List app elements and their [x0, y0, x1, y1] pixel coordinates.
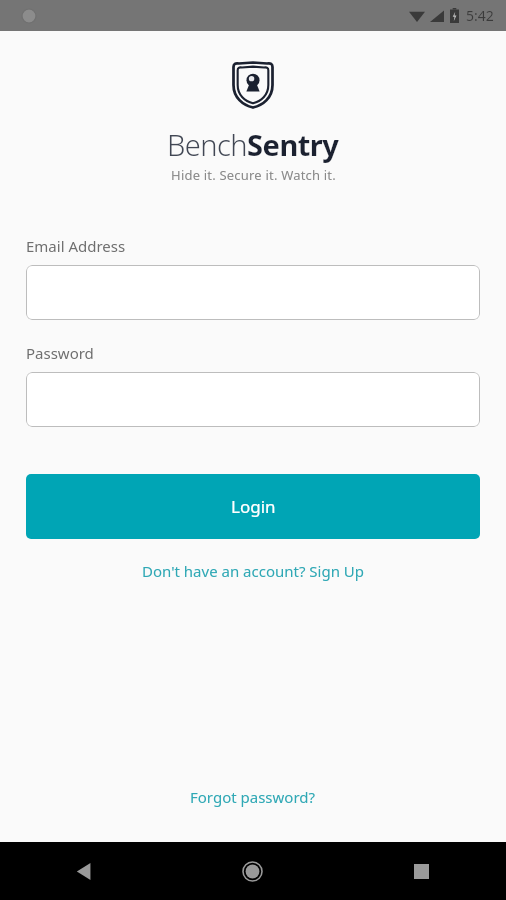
button[interactable]: Home — [168, 842, 337, 900]
button[interactable]: Don't have an account? Sign Up — [130, 557, 377, 585]
button[interactable] — [26, 265, 480, 320]
button[interactable]: Login — [26, 474, 480, 539]
staticText: Don't have an account? Sign Up — [142, 561, 365, 581]
staticText: Forgot password? — [190, 787, 316, 807]
button[interactable]: Back — [0, 842, 168, 900]
button[interactable]: Recent apps — [337, 842, 506, 900]
staticText: Email Address — [26, 236, 126, 256]
button[interactable]: Forgot password? — [178, 783, 328, 811]
staticText: BenchSentry — [167, 125, 339, 164]
staticText: 5:42 — [466, 6, 494, 25]
staticText: Login — [231, 495, 276, 518]
staticText: Hide it. Secure it. Watch it. — [171, 166, 336, 184]
staticText: Password — [26, 343, 94, 363]
button[interactable] — [26, 372, 480, 427]
